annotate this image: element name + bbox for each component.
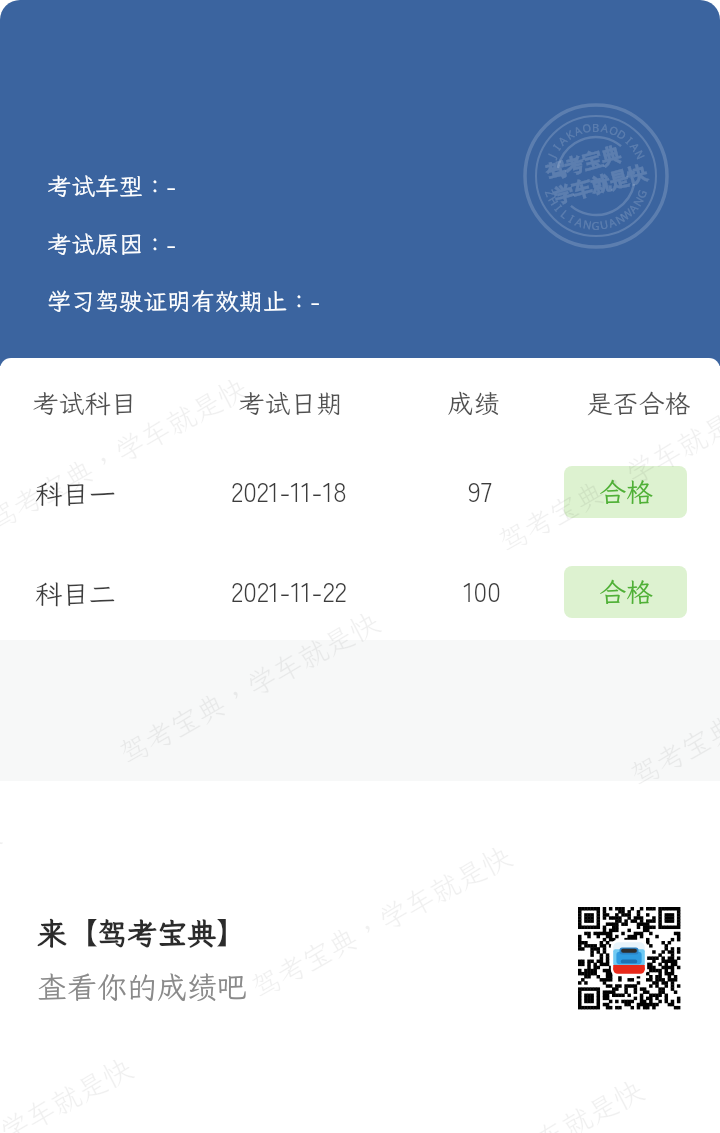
staticText: 考试日期 — [238, 386, 343, 420]
button[interactable]: 扫描二维码下载驾考宝典 — [570, 899, 688, 1017]
staticText: 是否合格 — [586, 386, 691, 420]
staticText: 成绩 — [447, 386, 500, 420]
staticText: 合格 — [599, 474, 653, 510]
button[interactable]: 合格 — [564, 566, 687, 618]
staticText: 科目一 — [35, 476, 116, 512]
staticText: 考试车型：- — [47, 170, 176, 202]
staticText: 合格 — [599, 574, 653, 610]
staticText: 2021-11-22 — [231, 571, 347, 610]
staticText: 2021-11-18 — [231, 471, 347, 510]
staticText: 97 — [468, 471, 492, 510]
staticText: 100 — [463, 571, 501, 610]
button[interactable]: 合格 — [564, 466, 687, 518]
staticText: 查看你的成绩吧 — [37, 967, 247, 1007]
staticText: 来【驾考宝典】 — [37, 913, 247, 953]
staticText: 科目二 — [35, 576, 116, 612]
staticText: 学习驾驶证明有效期止：- — [47, 285, 320, 317]
staticText: 考试科目 — [32, 386, 137, 420]
staticText: 考试原因：- — [47, 228, 176, 260]
